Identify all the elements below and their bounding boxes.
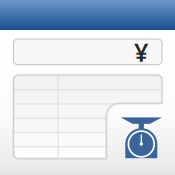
button[interactable]: ¥ <box>13 39 162 65</box>
staticText: ¥ <box>134 35 148 69</box>
